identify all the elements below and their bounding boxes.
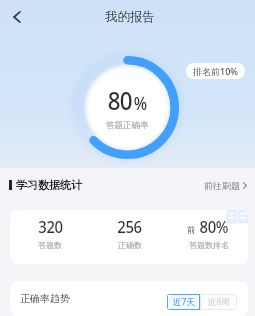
button[interactable]: 排名前10%	[186, 63, 245, 79]
staticText: 80	[108, 83, 132, 118]
button[interactable]: 近7天	[168, 295, 199, 309]
staticText: 我的报告	[105, 9, 155, 25]
staticText: 答题正确率	[106, 120, 149, 131]
button[interactable]: 320	[10, 210, 248, 264]
button[interactable]: 近8周	[201, 295, 236, 309]
staticText: 256	[117, 215, 142, 237]
staticText: 80%	[200, 215, 228, 237]
staticText: %	[134, 91, 147, 115]
button[interactable]: Back	[0, 0, 33, 33]
staticText: 正确数	[118, 240, 142, 250]
staticText: 近8周	[208, 296, 230, 308]
button[interactable]: 前往刷题	[204, 180, 247, 191]
staticText: 前	[187, 225, 196, 236]
staticText: 排名前10%	[193, 65, 238, 77]
staticText: 学习数据统计	[16, 178, 82, 192]
staticText: 320	[38, 215, 63, 237]
staticText: 前往刷题	[204, 180, 240, 191]
staticText: 近7天	[173, 296, 195, 308]
staticText: 答题数排名	[189, 240, 229, 250]
staticText: 答题数	[38, 240, 62, 250]
staticText: 正确率趋势	[20, 292, 70, 305]
